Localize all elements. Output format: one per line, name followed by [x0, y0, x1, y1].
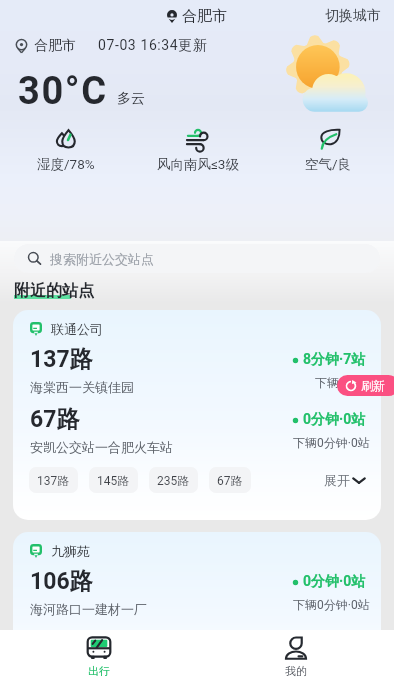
staticText: 湿度/78%	[37, 156, 95, 173]
staticText: 67路	[217, 473, 243, 488]
staticText: 安凯公交站一合肥火车站	[30, 439, 173, 455]
button[interactable]: 湿度/78%	[0, 127, 132, 173]
button[interactable]: 联通公司	[13, 310, 381, 520]
staticText: 搜索附近公交站点	[50, 251, 154, 267]
button[interactable]: 235路	[149, 467, 198, 493]
staticText: 合肥市	[182, 7, 227, 26]
staticText: 刷新	[361, 378, 385, 393]
staticText: 07-03 16:34更新	[98, 37, 208, 55]
staticText: 下辆0分钟·0站	[293, 597, 370, 612]
button[interactable]: 我的	[197, 630, 394, 700]
staticText: 30°C	[18, 69, 108, 114]
staticText: 145路	[97, 473, 130, 488]
button[interactable]: 风向南风≤3级	[132, 127, 263, 173]
button[interactable]: 九狮苑	[13, 532, 381, 692]
staticText: 海河路口一建材一厂	[30, 601, 147, 617]
staticText: 多云	[117, 90, 145, 108]
staticText: 联通公司	[51, 321, 103, 337]
staticText: 0分钟·0站	[303, 411, 366, 429]
staticText: 我的	[285, 664, 307, 678]
other: 出行	[86, 637, 112, 660]
staticText: 0分钟·0站	[303, 573, 366, 591]
staticText: 下辆0分钟	[315, 375, 370, 390]
staticText: 235路	[157, 473, 190, 488]
staticText: 海棠西一关镇佳园	[30, 379, 134, 395]
staticText: 九狮苑	[51, 543, 90, 559]
button[interactable]: 出行	[0, 630, 197, 700]
button[interactable]: 搜索附近公交站点	[14, 244, 380, 273]
button[interactable]: 145路	[89, 467, 138, 493]
button[interactable]: 67路	[209, 467, 251, 493]
button[interactable]: 空气/良	[263, 127, 394, 173]
staticText: 8分钟·7站	[303, 351, 366, 369]
button[interactable]: 展开	[324, 472, 367, 488]
staticText: 展开	[324, 472, 350, 488]
other: 我的	[283, 637, 309, 660]
staticText: 风向南风≤3级	[157, 156, 239, 173]
button[interactable]: Refresh	[337, 375, 394, 396]
staticText: 67路	[30, 405, 80, 434]
staticText: 空气/良	[305, 156, 352, 173]
staticText: 出行	[88, 664, 110, 678]
staticText: 合肥市	[34, 37, 76, 55]
staticText: 137路	[37, 473, 70, 488]
button[interactable]: 附近的站点	[14, 281, 94, 301]
staticText: 106路	[30, 567, 93, 596]
staticText: 下辆0分钟·0站	[293, 435, 370, 450]
button[interactable]: 切换城市	[325, 7, 394, 25]
button[interactable]: 137路	[29, 467, 78, 493]
staticText: 137路	[30, 345, 93, 374]
other: Refresh	[345, 380, 357, 392]
